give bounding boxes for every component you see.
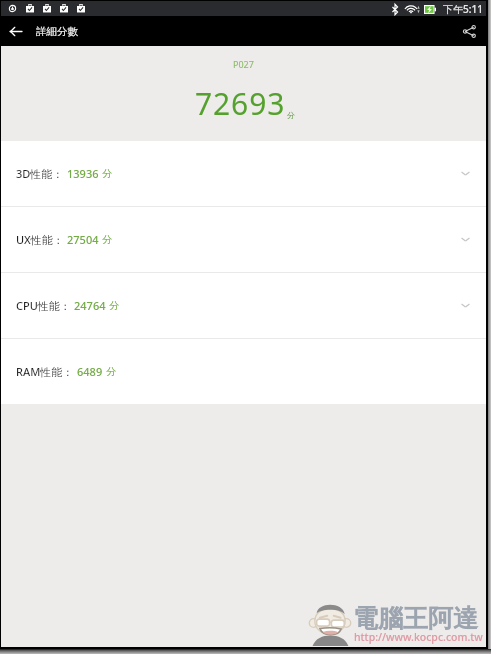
staticText: 分 [102,167,112,180]
staticText: 分 [287,110,295,120]
staticText: P027 [233,58,254,70]
button[interactable]: Back [1,16,31,46]
staticText: 72693 [195,83,286,124]
button[interactable]: UX性能： [1,207,486,272]
button[interactable]: 3D性能： [1,141,486,206]
staticText: 6489 [77,364,103,379]
staticText: 3D性能： [16,166,64,181]
button[interactable]: CPU性能： [1,273,486,338]
staticText: http://www.kocpc.com.tw [354,630,483,644]
staticText: 下午5:11 [443,2,483,16]
button[interactable]: Share [454,16,484,46]
staticText: 分 [106,365,116,378]
staticText: UX性能： [16,232,64,247]
staticText: 電腦王阿達 [353,603,478,634]
staticText: 分 [102,233,112,246]
staticText: 24764 [74,298,106,313]
staticText: 13936 [67,166,99,181]
staticText: 分 [109,299,119,312]
staticText: RAM性能： [16,364,74,379]
staticText: 27504 [67,232,99,247]
staticText: 詳細分數 [36,25,78,38]
staticText: CPU性能： [16,298,71,313]
button[interactable]: RAM性能： [1,339,486,404]
